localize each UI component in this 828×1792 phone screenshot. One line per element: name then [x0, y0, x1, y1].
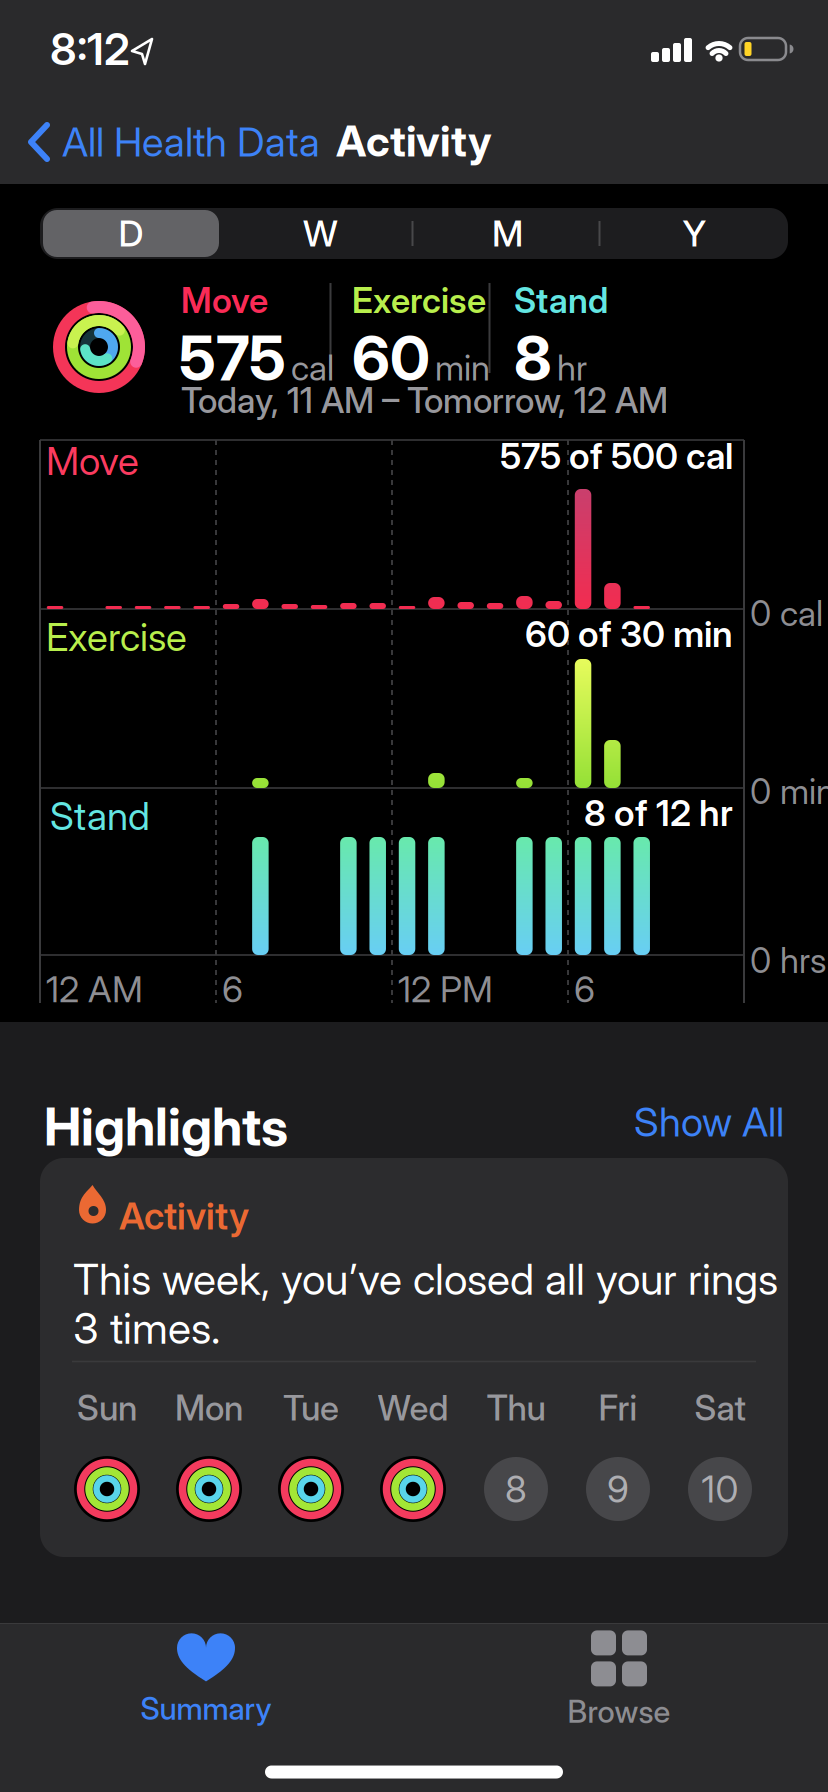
staticText: 575 of 500 cal	[500, 435, 733, 477]
staticText: cal	[291, 347, 334, 388]
staticText: Mon	[175, 1388, 243, 1428]
staticText: Sat	[694, 1388, 745, 1428]
staticText: 8:12	[50, 23, 130, 75]
staticText: M	[492, 212, 523, 255]
staticText: Exercise	[352, 280, 486, 321]
staticText: Stand	[514, 280, 608, 321]
staticText: Fri	[598, 1388, 637, 1428]
staticText: All Health Data	[62, 118, 320, 166]
staticText: Exercise	[46, 614, 187, 660]
staticText: 8	[505, 1467, 527, 1511]
staticText: Highlights	[44, 1096, 288, 1157]
button[interactable]: Summary	[96, 1630, 316, 1730]
staticText: Move	[181, 280, 268, 321]
staticText: 0 min	[750, 771, 828, 812]
staticText: hr	[557, 347, 587, 388]
staticText: 0 hrs	[750, 940, 826, 981]
staticText: Summary	[140, 1690, 271, 1727]
staticText: Browse	[567, 1693, 670, 1730]
staticText: This week, you’ve closed all your rings	[73, 1254, 778, 1304]
staticText: Y	[682, 212, 706, 255]
staticText: 10	[701, 1467, 738, 1511]
staticText: Move	[46, 438, 139, 484]
staticText: D	[118, 212, 143, 255]
staticText: 9	[607, 1467, 629, 1511]
staticText: Activity	[119, 1194, 249, 1238]
staticText: Thu	[486, 1388, 545, 1428]
button[interactable]: Browse	[509, 1630, 729, 1730]
staticText: 575	[179, 322, 286, 394]
staticText: Wed	[377, 1388, 448, 1428]
button[interactable]: All Health Data	[28, 120, 320, 164]
staticText: 6	[222, 968, 243, 1010]
button[interactable]: Activity	[40, 1158, 788, 1557]
staticText: Show All	[634, 1098, 784, 1146]
staticText: Activity	[336, 116, 492, 166]
button[interactable]: Y	[602, 208, 787, 259]
staticText: 6	[574, 968, 595, 1010]
staticText: 8 of 12 hr	[584, 792, 733, 834]
staticText: 3 times.	[73, 1303, 220, 1353]
staticText: min	[435, 347, 490, 388]
staticText: 60	[352, 322, 430, 394]
staticText: 0 cal	[750, 593, 823, 634]
staticText: Stand	[50, 793, 150, 839]
button[interactable]: Show All	[634, 1098, 784, 1146]
staticText: 8	[514, 322, 552, 394]
staticText: 12 AM	[46, 968, 143, 1010]
button[interactable]: D	[43, 210, 219, 257]
staticText: 60 of 30 min	[525, 613, 733, 655]
button[interactable]: W	[228, 208, 413, 259]
staticText: Sun	[77, 1388, 137, 1428]
staticText: Today, 11 AM – Tomorrow, 12 AM	[181, 380, 668, 421]
staticText: Tue	[283, 1388, 339, 1428]
button[interactable]: M	[415, 208, 600, 259]
staticText: 12 PM	[398, 968, 493, 1010]
staticText: W	[303, 212, 338, 255]
